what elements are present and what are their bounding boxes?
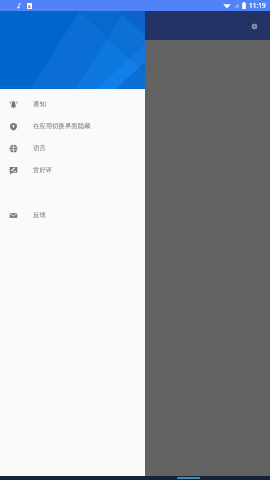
button[interactable]: 在应用切换界面隐藏 bbox=[0, 115, 145, 137]
staticText: 反馈 bbox=[33, 211, 46, 219]
staticText: 11:19 bbox=[249, 1, 266, 10]
button[interactable]: 通知 bbox=[0, 93, 145, 115]
staticText: 赏好评 bbox=[33, 166, 53, 174]
button[interactable]: 赏好评 bbox=[0, 159, 145, 181]
staticText: A bbox=[28, 4, 31, 9]
staticText: 语言 bbox=[33, 144, 46, 152]
button[interactable]: 语言 bbox=[0, 137, 145, 159]
button[interactable]: Settings bbox=[245, 17, 263, 35]
staticText: 通知 bbox=[33, 100, 46, 108]
button[interactable]: 反馈 bbox=[0, 204, 145, 226]
staticText: 在应用切换界面隐藏 bbox=[33, 122, 91, 130]
